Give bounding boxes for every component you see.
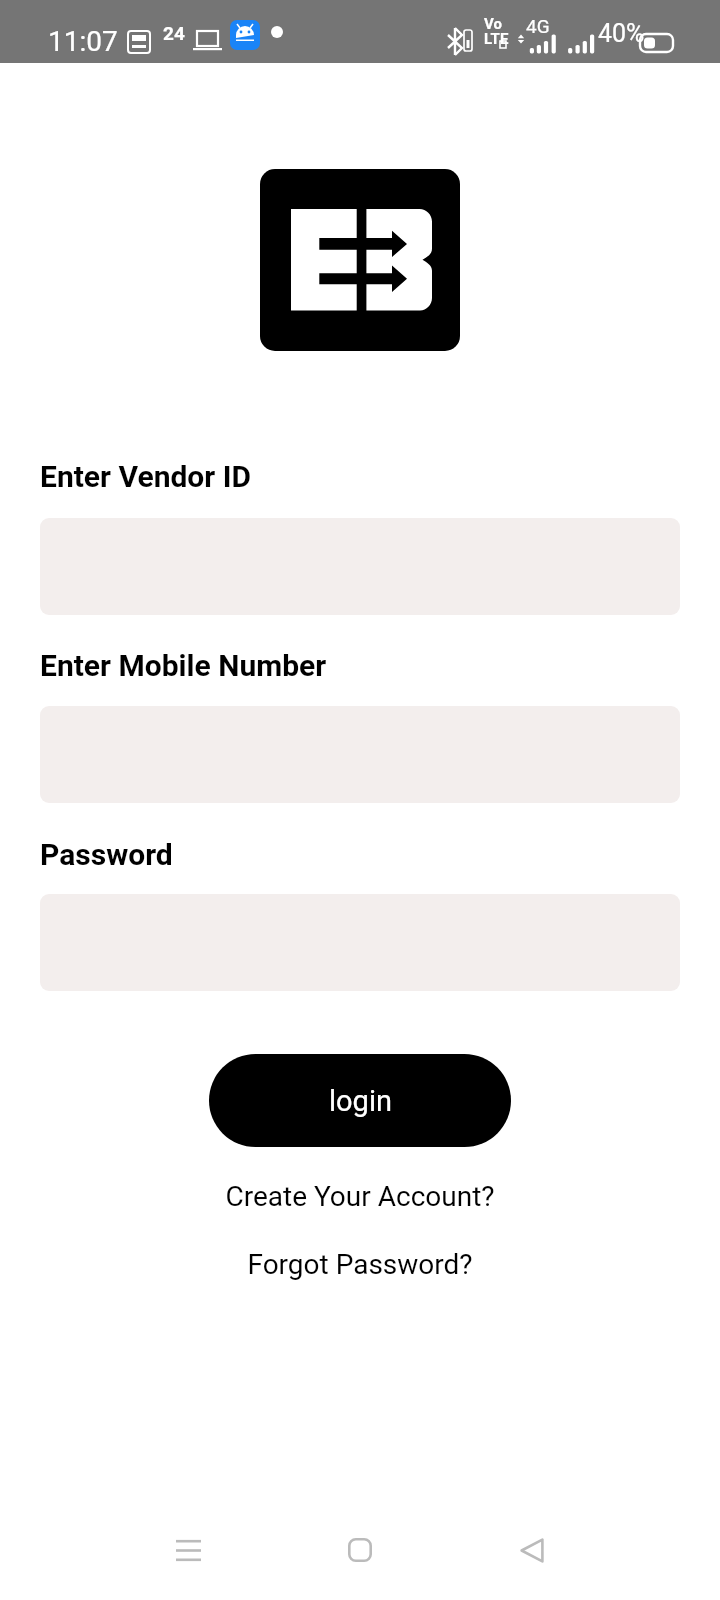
staticText: Password [40, 837, 173, 872]
button[interactable]: Forgot Password? [0, 1242, 720, 1286]
staticText: LTE [484, 30, 509, 48]
staticText: Forgot Password? [247, 1248, 473, 1281]
staticText: Create Your Account? [225, 1180, 495, 1213]
button[interactable]: Home [322, 1512, 398, 1588]
staticText: 40% [598, 19, 645, 48]
staticText: login [329, 1084, 392, 1118]
staticText: Enter Vendor ID [40, 459, 252, 494]
staticText: 4G [526, 15, 550, 37]
button[interactable]: login [209, 1054, 511, 1147]
button[interactable]: Recent apps [150, 1512, 226, 1588]
button[interactable]: Back [494, 1512, 570, 1588]
staticText: 24 [163, 22, 185, 44]
staticText: Vo [484, 15, 502, 33]
staticText: Enter Mobile Number [40, 648, 327, 683]
button[interactable]: Create Your Account? [0, 1174, 720, 1218]
staticText: 11:07 [48, 25, 118, 58]
